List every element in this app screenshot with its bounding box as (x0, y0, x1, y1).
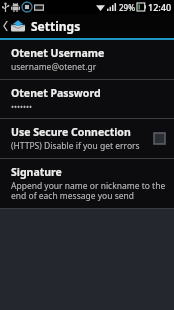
staticText: Append your name or nickname to the end … (11, 180, 166, 202)
staticText: Otenet Username (11, 46, 105, 60)
button[interactable]: Otenet Username (0, 40, 174, 79)
staticText: username@otenet.gr (11, 61, 97, 73)
button[interactable]: Otenet Password (0, 80, 174, 118)
button[interactable]: Signature (0, 159, 174, 208)
staticText: Otenet Password (11, 86, 101, 100)
staticText: 29% (119, 2, 135, 13)
button[interactable]: Navigate up, Settings (0, 14, 174, 38)
button[interactable]: Use Secure Connection checkbox (153, 132, 166, 145)
staticText: Use Secure Connection (11, 125, 131, 139)
button[interactable]: Use Secure Connection (0, 119, 174, 158)
staticText: Signature (11, 165, 62, 179)
staticText: Settings (31, 18, 81, 34)
staticText: 12:40 (148, 1, 172, 13)
staticText: ••••••• (11, 101, 33, 112)
staticText: (HTTPS) Disable if you get errors (11, 140, 140, 152)
